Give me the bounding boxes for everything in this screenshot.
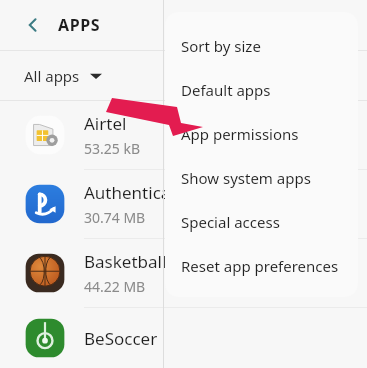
button[interactable]: Basketball [0, 239, 367, 307]
staticText: 44.22 MB [84, 277, 146, 296]
button[interactable]: All apps [0, 51, 367, 100]
staticText: Reset app preferences [181, 256, 339, 276]
button[interactable]: Sort by size [165, 24, 358, 68]
staticText: APPS [58, 14, 101, 36]
button[interactable]: App permissions [165, 112, 358, 156]
staticText: Basketball [84, 250, 167, 273]
button[interactable]: Airtel [0, 101, 367, 169]
button[interactable]: Special access [165, 200, 358, 244]
staticText: Show system apps [181, 168, 311, 188]
button[interactable]: Default apps [165, 68, 358, 112]
staticText: Special access [181, 212, 280, 232]
staticText: Sort by size [181, 36, 261, 56]
staticText: Airtel [84, 112, 127, 135]
button[interactable]: Back [14, 6, 52, 44]
staticText: All apps [24, 66, 80, 86]
button[interactable]: Authenticator [0, 170, 367, 238]
staticText: App permissions [181, 124, 299, 144]
staticText: BeSoccer [84, 327, 158, 350]
button[interactable]: Show system apps [165, 156, 358, 200]
staticText: 30.74 MB [84, 208, 146, 227]
button[interactable]: BeSoccer [0, 308, 367, 368]
staticText: Default apps [181, 80, 271, 100]
staticText: 53.25 kB [84, 139, 140, 158]
button[interactable]: Reset app preferences [165, 244, 358, 288]
staticText: Authenticator [84, 181, 194, 204]
